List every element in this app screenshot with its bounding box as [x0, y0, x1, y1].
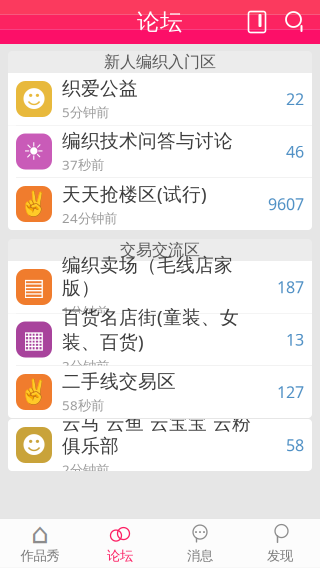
staticText: ☻ — [21, 85, 46, 113]
button[interactable]: 消息 — [160, 519, 240, 568]
button[interactable]: 论坛 — [80, 519, 160, 568]
staticText: 百货名店街(童装、女装、百货) — [62, 304, 239, 354]
staticText: 编织技术问答与讨论 — [62, 130, 233, 153]
button[interactable]: ✌ — [8, 178, 312, 230]
staticText: 论坛 — [107, 548, 133, 564]
button[interactable]: Compose — [238, 0, 276, 44]
staticText: ☀ — [23, 138, 45, 165]
button[interactable]: ▤ — [8, 261, 312, 313]
staticText: 13 — [286, 329, 304, 350]
staticText: 天天抢楼区(试行) — [62, 181, 207, 206]
staticText: 22 — [286, 88, 304, 110]
staticText: 织爱公益 — [62, 77, 138, 100]
staticText: 37秒前 — [62, 156, 104, 173]
staticText: 云马 云鱼 云宝宝 云粉俱乐部 — [62, 412, 251, 458]
staticText: ▦ — [22, 326, 45, 353]
staticText: 消息 — [187, 548, 213, 564]
button[interactable]: ☀ — [8, 125, 312, 178]
button[interactable]: ⌂ — [0, 519, 80, 568]
staticText: 127 — [277, 381, 304, 403]
staticText: 编织卖场（毛线店家版） — [62, 254, 233, 300]
staticText: 二手线交易区 — [62, 370, 176, 393]
staticText: 46 — [286, 141, 304, 162]
button[interactable]: ▦ — [8, 313, 312, 366]
staticText: ⌂ — [31, 518, 49, 549]
button[interactable]: ☻ — [8, 73, 312, 125]
staticText: ☻ — [21, 431, 46, 459]
button[interactable]: ☻ — [8, 419, 312, 471]
staticText: ✌ — [19, 190, 49, 218]
staticText: 187 — [277, 276, 304, 298]
staticText: ✌ — [19, 378, 49, 406]
button[interactable]: 发现 — [240, 519, 320, 568]
staticText: ▤ — [22, 273, 45, 301]
staticText: 新人编织入门区 — [104, 52, 216, 72]
staticText: 交易交流区 — [120, 240, 200, 260]
staticText: 作品秀 — [20, 548, 59, 564]
staticText: 2分钟前 — [62, 461, 109, 478]
staticText: 发现 — [267, 548, 293, 564]
staticText: 1分钟前 — [62, 303, 109, 320]
staticText: 论坛 — [137, 8, 183, 36]
staticText: 24分钟前 — [62, 209, 117, 227]
staticText: 9607 — [268, 193, 304, 215]
staticText: 3分钟前 — [62, 357, 109, 375]
staticText: 5分钟前 — [62, 103, 109, 121]
button[interactable]: ✌ — [8, 366, 312, 418]
staticText: 58秒前 — [62, 396, 104, 414]
button[interactable]: Search — [276, 0, 316, 44]
staticText: 58 — [286, 434, 304, 456]
